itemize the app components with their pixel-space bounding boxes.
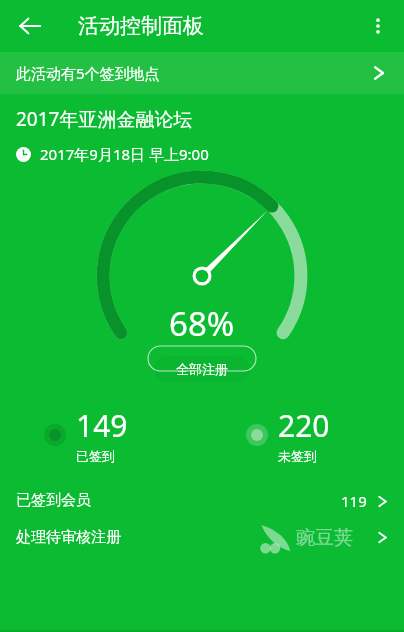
staticText: 未签到 xyxy=(278,448,317,464)
button[interactable]: 220 xyxy=(202,405,404,464)
button[interactable]: 149 xyxy=(0,405,202,464)
staticText: 149 xyxy=(76,405,128,446)
staticText: 2017年亚洲金融论坛 xyxy=(16,106,193,132)
staticText: 119 xyxy=(341,491,367,511)
staticText: 2017年9月18日 早上9:00 xyxy=(40,144,209,164)
button[interactable]: 全部注册 xyxy=(154,356,250,382)
staticText: 活动控制面板 xyxy=(78,13,204,39)
button[interactable]: Back xyxy=(8,4,52,48)
staticText: 已签到 xyxy=(76,448,115,464)
staticText: 处理待审核注册 xyxy=(16,528,121,547)
staticText: 全部注册 xyxy=(176,361,228,377)
button[interactable]: More options xyxy=(356,4,400,48)
staticText: 此活动有5个签到地点 xyxy=(16,63,160,83)
staticText: 68% xyxy=(169,301,235,346)
button[interactable]: 处理待审核注册 xyxy=(0,519,404,556)
button[interactable]: 此活动有5个签到地点 xyxy=(0,52,404,94)
button[interactable]: 已签到会员 xyxy=(0,482,404,519)
staticText: 已签到会员 xyxy=(16,491,91,510)
staticText: 豌豆荚 xyxy=(296,526,353,550)
staticText: 220 xyxy=(278,405,330,446)
